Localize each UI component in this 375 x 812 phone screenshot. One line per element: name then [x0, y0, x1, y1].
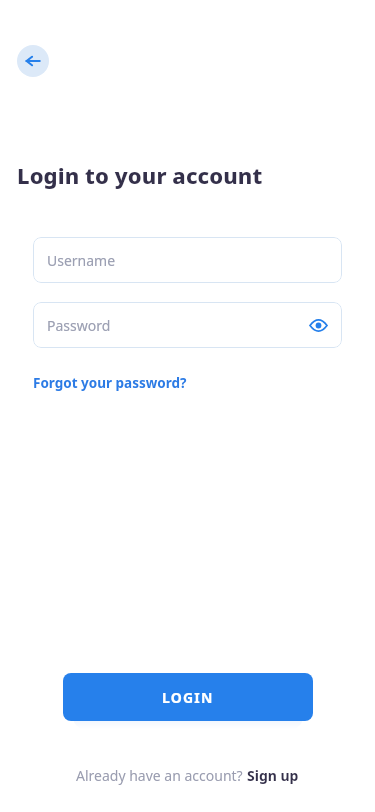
staticText: Login to your account	[17, 160, 263, 190]
staticText: LOGIN	[162, 688, 214, 707]
staticText: Already have an account?	[76, 766, 247, 785]
staticText: Username	[47, 251, 116, 270]
button[interactable]: Username	[33, 237, 342, 283]
staticText: Sign up	[247, 766, 299, 785]
button[interactable]: Show password	[304, 311, 332, 339]
button[interactable]: Sign up	[247, 766, 299, 785]
button[interactable]: Back	[17, 45, 49, 77]
button[interactable]: Password	[33, 302, 342, 348]
staticText: Password	[47, 316, 111, 335]
button[interactable]: Forgot your password?	[33, 372, 187, 394]
button[interactable]: LOGIN	[63, 673, 313, 721]
staticText: Forgot your password?	[33, 374, 187, 392]
